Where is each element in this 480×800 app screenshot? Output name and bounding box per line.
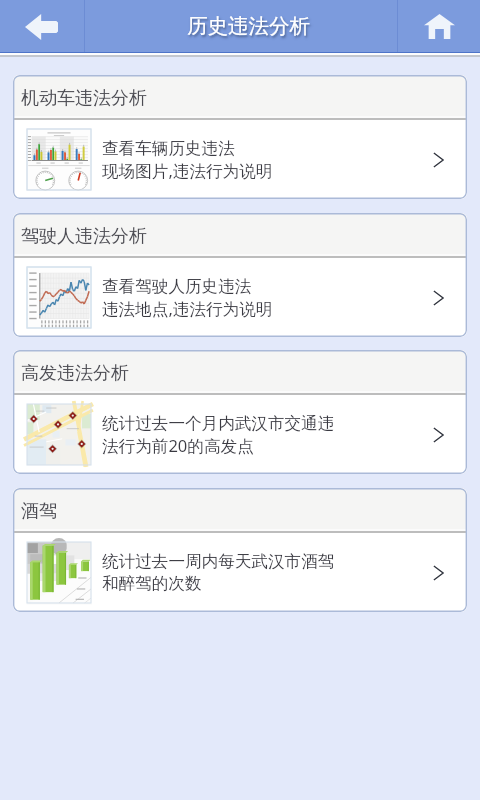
staticText: 高发违法分析 <box>21 362 129 385</box>
button[interactable]: 酒驾 <box>13 488 467 529</box>
button[interactable]: 统计过去一周内每天武汉市酒驾 和醉驾的次数 <box>13 533 467 612</box>
staticText: 统计过去一个月内武汉市交通违 法行为前20的高发点 <box>102 413 335 457</box>
button[interactable]: 查看驾驶人历史违法 违法地点,违法行为说明 <box>13 258 467 337</box>
button[interactable]: 高发违法分析 <box>13 350 467 391</box>
button[interactable]: 机动车违法分析 <box>13 75 467 116</box>
button[interactable]: 驾驶人违法分析 <box>13 213 467 254</box>
button[interactable]: 统计过去一个月内武汉市交通违 法行为前20的高发点 <box>13 395 467 474</box>
staticText: 查看车辆历史违法 现场图片,违法行为说明 <box>102 138 273 182</box>
staticText: 机动车违法分析 <box>21 87 147 110</box>
staticText: 查看驾驶人历史违法 违法地点,违法行为说明 <box>102 276 273 320</box>
button[interactable]: Home <box>397 0 480 52</box>
button[interactable]: Back <box>0 0 84 52</box>
staticText: 酒驾 <box>21 500 57 523</box>
staticText: 统计过去一周内每天武汉市酒驾 和醉驾的次数 <box>102 551 335 594</box>
staticText: 历史违法分析 <box>187 13 310 39</box>
button[interactable]: 查看车辆历史违法 现场图片,违法行为说明 <box>13 120 467 199</box>
staticText: 驾驶人违法分析 <box>21 225 147 248</box>
